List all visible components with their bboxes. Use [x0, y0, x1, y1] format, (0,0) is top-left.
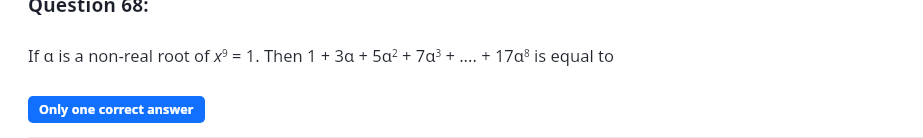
staticText: If α is a non-real root of x9 = 1. Then … [28, 44, 614, 66]
staticText: Only one correct answer [39, 101, 194, 118]
button[interactable]: Only one correct answer [28, 96, 205, 123]
staticText: Question 68: [28, 0, 149, 18]
